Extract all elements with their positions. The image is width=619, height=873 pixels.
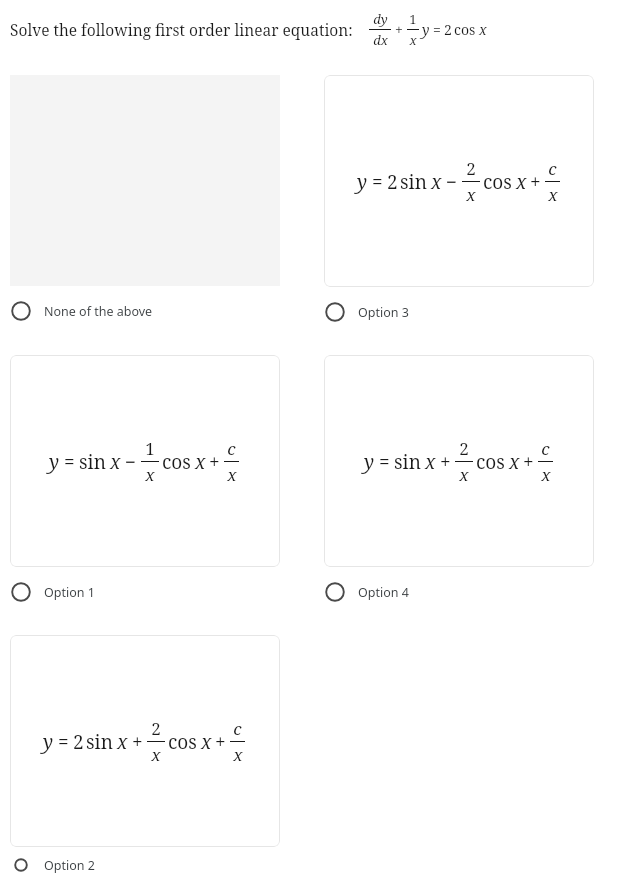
staticText: y	[422, 20, 430, 39]
staticText: −	[446, 169, 458, 195]
button[interactable]: y	[10, 635, 280, 847]
staticText: y	[357, 169, 368, 195]
button[interactable]: Option 3	[324, 297, 409, 327]
button[interactable]: y	[324, 355, 594, 567]
staticText: Option 4	[358, 584, 409, 601]
staticText: x	[466, 183, 476, 206]
staticText: x	[459, 463, 469, 486]
staticText: x	[409, 31, 417, 49]
staticText: x	[227, 463, 237, 486]
staticText: x	[425, 449, 436, 475]
staticText: sin	[394, 449, 421, 475]
staticText: cos	[454, 20, 476, 39]
button[interactable]: Option 2	[10, 857, 95, 873]
staticText: x	[145, 463, 155, 486]
staticText: x	[541, 463, 551, 486]
staticText: x	[201, 729, 212, 755]
staticText: +	[209, 449, 220, 475]
button[interactable]: y	[324, 75, 594, 287]
staticText: sin	[79, 449, 106, 475]
staticText: =	[64, 449, 75, 475]
staticText: x	[516, 169, 527, 195]
staticText: +	[523, 449, 534, 475]
button[interactable]: None of the above	[10, 296, 153, 326]
staticText: c	[548, 157, 557, 180]
staticText: y	[364, 449, 375, 475]
staticText: y	[43, 729, 54, 755]
staticText: cos	[483, 169, 512, 195]
staticText: +	[132, 729, 143, 755]
staticText: 2	[151, 717, 161, 740]
staticText: Solve the following first order linear e…	[10, 19, 353, 40]
staticText: 2	[459, 437, 469, 460]
staticText: c	[227, 437, 236, 460]
staticText: 2	[73, 729, 84, 755]
button[interactable]: Option 4	[324, 577, 409, 607]
staticText: Option 2	[44, 857, 95, 873]
staticText: +	[215, 729, 226, 755]
staticText: cos	[162, 449, 191, 475]
staticText: −	[125, 449, 137, 475]
staticText: x	[233, 743, 243, 766]
staticText: None of the above	[44, 303, 153, 320]
staticText: dx	[373, 31, 388, 49]
staticText: x	[431, 169, 442, 195]
staticText: sin	[86, 729, 113, 755]
button[interactable]: Option 1	[10, 577, 95, 607]
staticText: +	[530, 169, 541, 195]
staticText: x	[195, 449, 206, 475]
staticText: sin	[400, 169, 427, 195]
staticText: 2	[387, 169, 398, 195]
button[interactable]: y	[10, 355, 280, 567]
staticText: y	[49, 449, 60, 475]
staticText: Option 3	[358, 304, 409, 321]
staticText: c	[541, 437, 550, 460]
staticText: 1	[145, 437, 155, 460]
staticText: 2	[466, 157, 476, 180]
staticText: =	[58, 729, 69, 755]
staticText: +	[440, 449, 451, 475]
staticText: 1	[409, 10, 417, 28]
staticText: =	[379, 449, 390, 475]
staticText: x	[479, 20, 487, 39]
staticText: c	[233, 717, 242, 740]
staticText: x	[110, 449, 121, 475]
staticText: cos	[476, 449, 505, 475]
staticText: x	[151, 743, 161, 766]
staticText: cos	[168, 729, 197, 755]
staticText: +	[395, 20, 403, 39]
staticText: =	[433, 20, 441, 39]
staticText: =	[372, 169, 383, 195]
staticText: dy	[373, 10, 388, 28]
staticText: x	[509, 449, 520, 475]
staticText: x	[548, 183, 558, 206]
staticText: Option 1	[44, 584, 95, 601]
staticText: x	[117, 729, 128, 755]
staticText: 2	[444, 20, 452, 39]
